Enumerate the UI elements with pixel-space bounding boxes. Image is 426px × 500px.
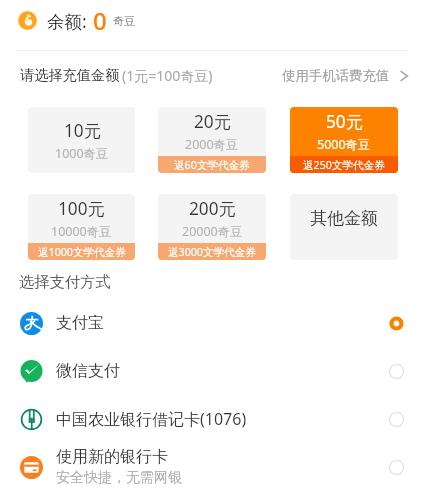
staticText: 10000奇豆 — [51, 223, 112, 240]
other: 微信支付 — [20, 360, 43, 383]
button[interactable]: 中国农业银行 — [0, 395, 426, 443]
staticText: 1000奇豆 — [55, 145, 109, 162]
staticText: 返1000文学代金券 — [38, 245, 126, 259]
button[interactable]: 支付宝 — [0, 299, 426, 347]
button[interactable]: 100元 — [28, 194, 135, 260]
button[interactable]: 其他金额 — [290, 194, 398, 260]
staticText: 返250文学代金券 — [303, 158, 385, 172]
staticText: 返60文学代金券 — [174, 158, 250, 172]
other: 支付宝 — [20, 312, 43, 335]
button[interactable]: 200元 — [158, 194, 266, 260]
staticText: 100元 — [58, 197, 105, 220]
staticText: 中国农业银行借记卡(1076) — [56, 408, 247, 430]
other: 中国农业银行 — [20, 408, 43, 431]
staticText: 20元 — [194, 110, 231, 133]
staticText: 支付宝 — [56, 313, 104, 333]
staticText: 0 — [93, 4, 107, 37]
button[interactable]: 10元 — [28, 107, 135, 173]
button[interactable]: 微信支付 — [0, 347, 426, 395]
staticText: 请选择充值金额 — [20, 66, 120, 84]
staticText: 2000奇豆 — [185, 136, 239, 153]
button[interactable]: 使用手机话费充值 — [282, 67, 410, 84]
staticText: 使用新的银行卡 — [56, 447, 168, 467]
staticText: (1元=100奇豆) — [122, 66, 213, 84]
staticText: 10元 — [64, 119, 101, 142]
staticText: 选择支付方式 — [19, 272, 111, 291]
staticText: 20000奇豆 — [182, 223, 243, 240]
staticText: 使用手机话费充值 — [282, 67, 390, 84]
button[interactable]: 20元 — [158, 107, 266, 173]
button[interactable]: 50元 — [290, 107, 398, 173]
staticText: 其他金额 — [310, 208, 378, 229]
staticText: 余额: — [47, 9, 87, 33]
staticText: 50元 — [326, 110, 363, 133]
staticText: 安全快捷，无需网银 — [56, 469, 182, 487]
staticText: 奇豆 — [113, 14, 135, 28]
button[interactable]: 使用新的银行卡 — [0, 443, 426, 491]
other: 使用新的银行卡 — [20, 456, 43, 479]
staticText: 微信支付 — [56, 361, 120, 381]
staticText: 200元 — [189, 197, 236, 220]
staticText: 返3000文学代金券 — [168, 245, 256, 259]
staticText: 5000奇豆 — [317, 136, 371, 153]
